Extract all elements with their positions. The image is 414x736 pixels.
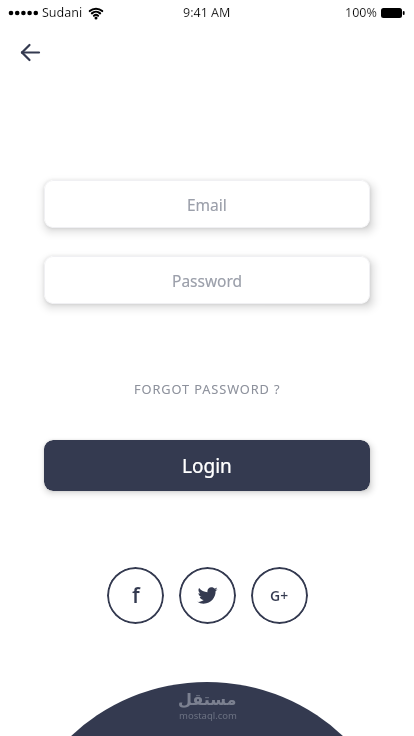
button[interactable]: G+ — [251, 567, 308, 624]
button[interactable]: FORGOT PASSWORD ? — [134, 380, 281, 397]
staticText: 100% — [345, 4, 377, 21]
button[interactable] — [19, 41, 41, 63]
button[interactable]: Password — [44, 256, 370, 304]
staticText: Sudani — [42, 4, 83, 21]
button[interactable]: Login — [44, 440, 370, 491]
staticText: 9:41 AM — [183, 4, 231, 21]
staticText: Email — [187, 194, 227, 215]
staticText: G+ — [270, 586, 289, 605]
staticText: Login — [182, 453, 232, 479]
staticText: Password — [172, 270, 243, 291]
staticText: mostaql.com — [179, 709, 237, 722]
button[interactable]: Email — [44, 180, 370, 228]
staticText: مستقل — [178, 690, 237, 709]
button[interactable]: f — [107, 567, 164, 624]
staticText: f — [132, 581, 140, 610]
button[interactable] — [179, 567, 236, 624]
